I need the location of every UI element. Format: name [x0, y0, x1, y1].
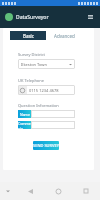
staticText: Advanced — [54, 33, 75, 39]
button[interactable]: Home — [44, 182, 72, 200]
button[interactable]: Advanced — [54, 31, 75, 40]
button[interactable]: Comments — [18, 121, 31, 129]
button[interactable]: Basic — [10, 31, 46, 40]
button[interactable]: 0115 1234 4678 — [18, 85, 75, 95]
button[interactable]: Recents — [72, 182, 100, 200]
staticText: Ilkeston Town — [21, 62, 47, 67]
staticText: Question Information — [18, 103, 59, 108]
staticText: UK Telephone — [18, 78, 45, 83]
button[interactable]: Name — [18, 110, 31, 118]
staticText: Name — [20, 112, 30, 117]
staticText: Comments — [18, 121, 31, 129]
button[interactable]: Hide keyboard — [0, 182, 16, 200]
staticText: Basic — [23, 33, 34, 39]
staticText: Survey District — [18, 52, 45, 57]
staticText: DataSurveyor — [16, 14, 49, 21]
button[interactable]: Back — [16, 182, 44, 200]
button[interactable]: SEND SURVEY — [33, 141, 59, 150]
button[interactable]: Menu — [85, 12, 95, 22]
staticText: 0115 1234 4678 — [29, 88, 59, 93]
staticText: SEND SURVEY — [33, 143, 59, 148]
button[interactable]: Ilkeston Town — [18, 59, 75, 69]
